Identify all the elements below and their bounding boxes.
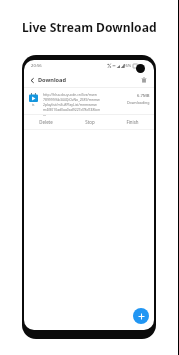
staticText: Live Stream Download (22, 19, 157, 35)
button[interactable]: Finish (111, 115, 154, 129)
staticText: Downloading (127, 100, 150, 105)
staticText: Delete (39, 119, 53, 125)
button[interactable]: Delete all (139, 75, 149, 85)
staticText: 76% (123, 63, 132, 69)
staticText: 20:56 (31, 63, 42, 69)
staticText: Download (38, 76, 66, 84)
staticText: Stop (85, 119, 95, 125)
staticText: http://hlsa.douyucdn.cn/live/mwn 789999/… (43, 92, 103, 117)
staticText: Finish (126, 119, 139, 125)
button[interactable]: Add download (133, 308, 149, 324)
staticText: 6.7MB (137, 93, 150, 99)
button[interactable]: Back (27, 75, 37, 85)
button[interactable]: Stop (68, 115, 111, 129)
staticText: ts (32, 103, 35, 107)
button[interactable]: Delete (24, 115, 68, 129)
